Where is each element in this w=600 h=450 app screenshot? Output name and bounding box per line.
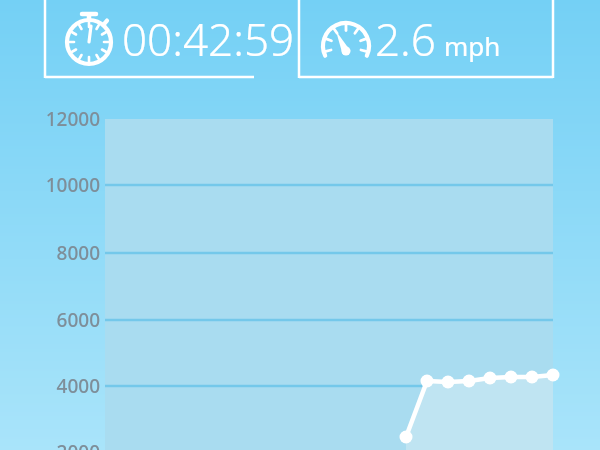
button[interactable]: Elapsed time 00:42:59 [0,0,254,79]
button[interactable]: Current speed 2.6 mph [254,0,600,79]
